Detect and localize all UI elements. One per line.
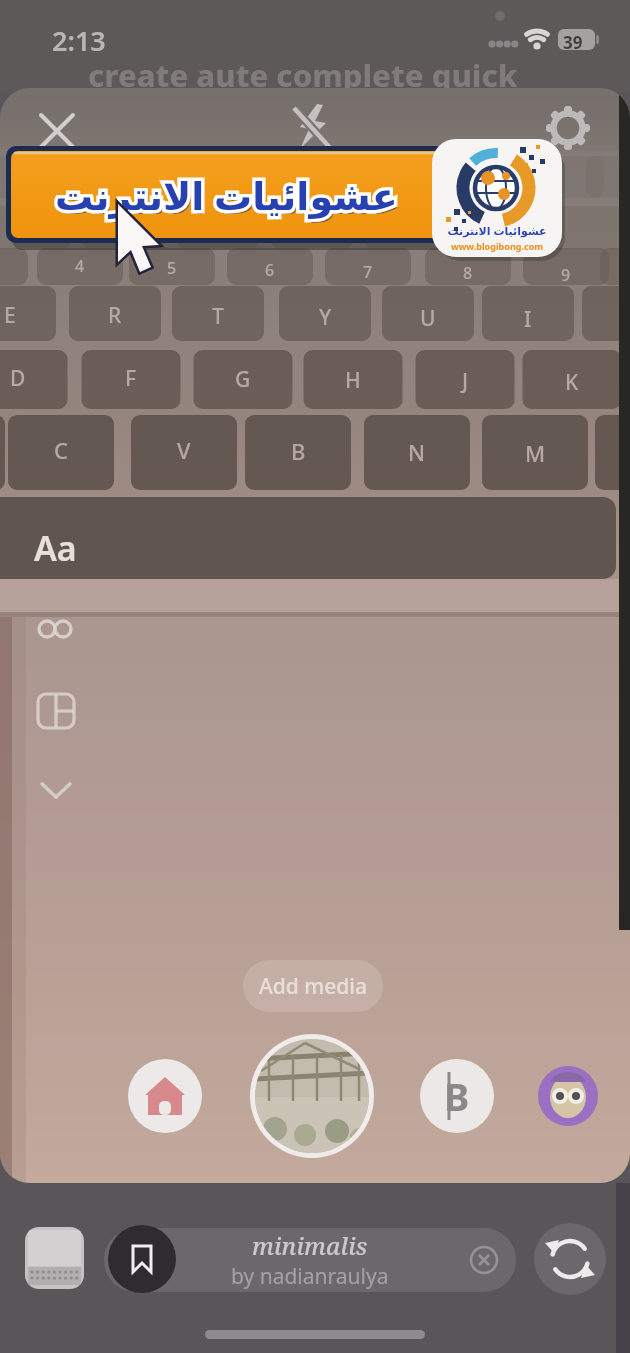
button[interactable]: Aa [34,524,84,572]
staticText: عشوائيات الانترنت [55,169,398,221]
staticText: C [54,435,68,465]
button[interactable] [38,776,78,806]
staticText: 39 [563,31,583,54]
staticText: www.blogibong.com [432,240,562,252]
button[interactable] [36,692,78,732]
staticText: G [235,365,251,394]
button[interactable] [546,106,590,150]
staticText: H [345,366,361,395]
staticText: minimalis [252,1229,368,1262]
staticText: 5 [167,257,177,279]
staticText: F [125,364,137,393]
staticText: I [524,305,532,334]
staticText: B [444,1070,470,1122]
staticText: create aute complete quick [88,54,518,96]
button[interactable] [250,1034,374,1158]
button[interactable] [108,1225,176,1293]
button[interactable] [534,1223,606,1295]
staticText: by nadianraulya [231,1262,389,1291]
staticText: عشوائيات الانترنت [55,169,398,221]
staticText: 9 [561,264,571,286]
staticText: N [408,437,426,467]
staticText: D [10,364,26,393]
staticText: 2:13 [52,22,106,59]
staticText: عشوائيات الانترنت [58,173,401,225]
staticText: Add media [259,972,367,1001]
staticText: M [525,438,546,468]
button[interactable] [128,1059,202,1133]
staticText: R [108,301,122,330]
staticText: Aa [34,525,77,571]
staticText: Y [319,303,332,332]
button[interactable]: عشوائيات الانترنت [6,146,446,244]
button[interactable]: minimalis [104,1228,516,1292]
staticText: T [212,302,224,331]
staticText: 6 [265,259,275,281]
button[interactable] [292,104,336,152]
staticText: E [4,301,16,330]
staticText: B [291,436,306,466]
staticText: K [565,368,579,397]
button[interactable] [34,108,80,154]
button[interactable]: Add media [243,960,383,1012]
button[interactable] [34,608,80,648]
button[interactable]: B [420,1059,494,1133]
staticText: U [420,304,436,333]
staticText: 8 [463,262,473,284]
staticText: 7 [363,261,373,283]
button[interactable] [25,1227,84,1289]
staticText: 4 [75,255,85,277]
button[interactable] [538,1066,598,1126]
staticText: J [462,367,469,396]
staticText: عشوائيات الانترنت [432,223,562,238]
staticText: V [177,435,191,465]
